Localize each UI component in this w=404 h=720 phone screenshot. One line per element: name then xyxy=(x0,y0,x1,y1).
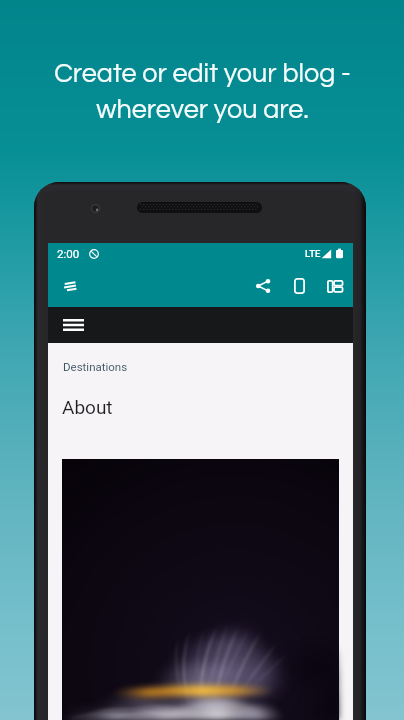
staticText: Destinations xyxy=(63,360,128,373)
button[interactable]: Sort xyxy=(54,270,86,302)
staticText: About xyxy=(62,396,113,418)
staticText: LTE xyxy=(305,248,321,259)
staticText: 2:00 xyxy=(57,247,80,260)
staticText: wherever you are. xyxy=(96,96,309,124)
button[interactable]: Menu xyxy=(57,309,89,341)
staticText: Create or edit your blog - xyxy=(54,60,351,88)
button[interactable]: Layout xyxy=(320,271,350,301)
button[interactable]: Share xyxy=(248,271,278,301)
button[interactable]: Preview on device xyxy=(284,271,314,301)
